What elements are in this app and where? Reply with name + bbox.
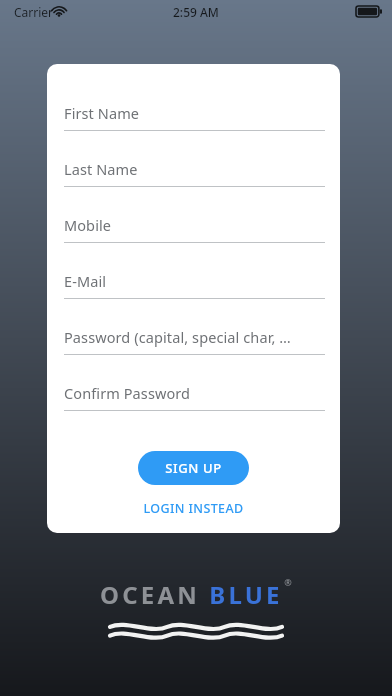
button[interactable]: SIGN UP xyxy=(138,451,249,485)
staticText: Password (capital, special char, … xyxy=(64,327,291,347)
staticText: First Name xyxy=(64,103,140,123)
staticText: LOGIN INSTEAD xyxy=(143,500,244,517)
staticText: Last Name xyxy=(64,159,138,179)
button[interactable]: First Name xyxy=(47,92,340,148)
other: Wi-Fi signal xyxy=(52,5,66,17)
button[interactable]: Mobile xyxy=(47,204,340,260)
button[interactable]: Confirm Password xyxy=(47,372,340,428)
staticText: Mobile xyxy=(64,215,112,235)
button[interactable]: LOGIN INSTEAD xyxy=(133,496,254,521)
staticText: Confirm Password xyxy=(64,383,191,403)
other: Battery full xyxy=(356,6,382,17)
staticText: BLUE xyxy=(209,578,283,611)
button[interactable]: Last Name xyxy=(47,148,340,204)
button[interactable]: Password (capital, special char, … xyxy=(47,316,340,372)
staticText: OCEAN xyxy=(100,578,200,611)
staticText: ® xyxy=(284,576,292,588)
staticText: 2:59 AM xyxy=(173,4,219,20)
staticText: SIGN UP xyxy=(165,459,222,477)
staticText: Carrier xyxy=(14,4,54,20)
button[interactable]: E-Mail xyxy=(47,260,340,316)
staticText: E-Mail xyxy=(64,271,107,291)
